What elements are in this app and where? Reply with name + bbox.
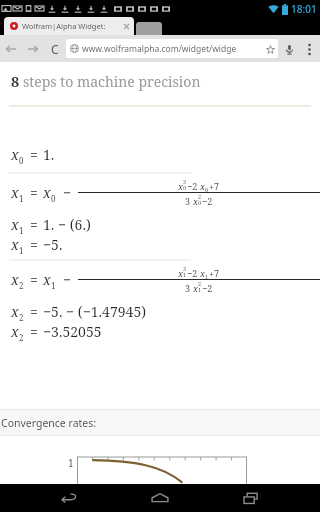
button[interactable]: Back [47,484,91,512]
staticText: x [200,180,205,192]
button[interactable]: Bookmark this page [263,42,277,56]
staticText: 1. − (6.) [43,215,91,234]
staticText: C [51,41,59,57]
staticText: 1 [198,286,202,293]
staticText: −2 [187,180,200,192]
staticText: x [200,267,205,279]
staticText: 2 [19,280,24,291]
button[interactable]: Forward [22,38,44,60]
staticText: 3 [185,195,193,207]
button[interactable]: More options [300,40,318,58]
staticText: = [30,215,38,234]
staticText: x [193,195,198,207]
staticText: −5. [43,235,63,254]
button[interactable]: www.wolframalpha.com/widget/widge [66,39,278,58]
staticText: 0 [183,184,187,191]
staticText: −3.52055 [43,322,102,341]
button[interactable]: Close tab [121,21,131,31]
button[interactable]: Wolfram|Alpha Widget: [4,17,134,35]
staticText: 2 [19,332,24,343]
staticText: = [30,270,38,289]
staticText: 1 [68,456,74,470]
staticText: = [30,302,38,321]
staticText: 0 [198,199,202,206]
staticText: 1 [51,280,56,291]
staticText: x [43,270,51,289]
staticText: x [178,180,183,192]
button[interactable]: Back [0,38,22,60]
staticText: 0 [51,193,56,204]
staticText: − [63,270,72,289]
staticText: 1 [19,245,24,256]
staticText: Convergence rates: [1,416,97,430]
staticText: x [11,302,19,321]
staticText: 3 [185,282,193,294]
button[interactable]: Convergence rates: [0,410,320,435]
staticText: x [193,282,198,294]
button[interactable]: Voice search [278,38,300,60]
staticText: 3 [183,178,187,185]
staticText: 0 [19,155,24,166]
staticText: 1 [19,225,24,236]
staticText: +7 [209,267,220,279]
staticText: 8 [11,71,20,91]
button[interactable]: Home [138,484,182,512]
staticText: x [11,215,19,234]
staticText: = [30,145,38,164]
staticText: 2 [198,193,202,200]
staticText: Wolfram|Alpha Widget: [22,21,106,31]
staticText: = [30,322,38,341]
staticText: −5. − (−1.47945) [43,302,147,321]
staticText: 1 [183,271,187,278]
staticText: 0 [205,186,209,193]
staticText: 2 [198,280,202,287]
staticText: 18:01 [291,2,317,16]
staticText: 1 [205,273,209,280]
staticText: x [11,145,19,164]
button[interactable]: Reload page [44,38,66,60]
staticText: x [11,322,19,341]
staticText: −2 [202,282,213,294]
staticText: www.wolframalpha.com/widget/widge [82,43,237,55]
staticText: 1 [19,193,24,204]
staticText: x [11,235,19,254]
staticText: 3 [183,265,187,272]
staticText: − [63,183,72,202]
staticText: 2 [19,312,24,323]
staticText: 1. [43,145,55,164]
staticText: −2 [202,195,213,207]
staticText: x [11,270,19,289]
staticText: = [30,183,38,202]
button[interactable]: Switch to other tab [136,22,162,35]
button[interactable]: Recent apps [229,484,273,512]
staticText: +7 [209,180,220,192]
staticText: x [43,183,51,202]
staticText: −2 [187,267,200,279]
staticText: x [178,267,183,279]
staticText: steps to machine precision [23,72,201,91]
staticText: x [11,183,19,202]
staticText: = [30,235,38,254]
